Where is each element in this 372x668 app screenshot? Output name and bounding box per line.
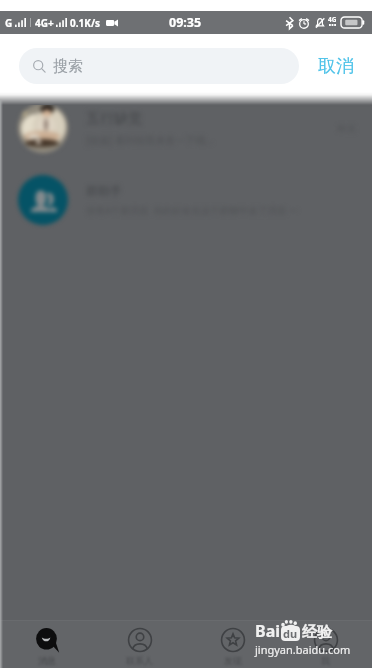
staticText: 4G xyxy=(328,15,337,24)
staticText: 09:35 xyxy=(169,14,202,31)
staticText: 发现 xyxy=(224,655,242,666)
staticText: 搜索 xyxy=(53,57,83,76)
button[interactable]: 联系人 xyxy=(93,621,186,668)
button[interactable]: 发现 xyxy=(186,621,279,668)
staticText: 经验 xyxy=(302,623,332,642)
staticText: G xyxy=(5,16,13,30)
button[interactable]: 搜索 xyxy=(19,48,299,84)
staticText: 联系人 xyxy=(126,655,153,666)
staticText: 消息 xyxy=(38,655,56,666)
button[interactable]: 群助手 xyxy=(0,164,372,236)
staticText: 取消 xyxy=(318,55,354,78)
button[interactable]: 消息 xyxy=(0,621,93,668)
button[interactable]: 取消 xyxy=(299,47,354,86)
staticText: 0.1K/s xyxy=(70,16,101,30)
button[interactable]: 五行缺觉 xyxy=(0,92,372,164)
staticText: 4G+ xyxy=(35,16,54,30)
staticText: jingyan.baidu.com xyxy=(255,642,351,657)
staticText: du xyxy=(283,626,298,641)
button[interactable]: 我 xyxy=(279,621,372,668)
staticText: Bai xyxy=(255,620,281,642)
